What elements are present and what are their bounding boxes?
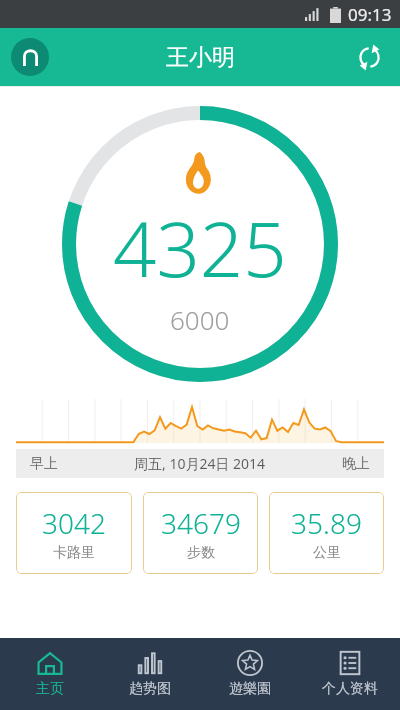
staticText: 卡路里 xyxy=(53,544,95,562)
staticText: 主页 xyxy=(36,680,64,698)
staticText: 早上 xyxy=(30,455,58,473)
staticText: 晚上 xyxy=(342,455,370,473)
staticText: 个人资料 xyxy=(322,680,378,698)
button[interactable]: Refresh xyxy=(351,39,387,75)
button[interactable]: 34679 xyxy=(143,492,258,574)
button[interactable]: 个人资料 xyxy=(300,638,400,710)
staticText: 周五, 10月24日 2014 xyxy=(134,454,266,473)
button[interactable]: Profile xyxy=(11,38,49,76)
button[interactable]: 趋势图 xyxy=(100,638,200,710)
staticText: 6000 xyxy=(170,302,230,337)
staticText: 趋势图 xyxy=(129,680,171,698)
staticText: 遊樂園 xyxy=(229,680,271,698)
button[interactable]: 3042 xyxy=(16,492,132,574)
button[interactable]: 35.89 xyxy=(269,492,384,574)
staticText: 34679 xyxy=(161,504,241,542)
staticText: 35.89 xyxy=(291,504,362,542)
button[interactable]: 遊樂園 xyxy=(200,638,300,710)
button[interactable]: 主页 xyxy=(0,638,100,710)
staticText: 公里 xyxy=(313,544,341,562)
staticText: 王小明 xyxy=(166,43,235,72)
staticText: 4325 xyxy=(113,196,287,300)
staticText: 3042 xyxy=(42,504,106,542)
staticText: 步数 xyxy=(187,544,215,562)
staticText: 09:13 xyxy=(348,3,392,26)
